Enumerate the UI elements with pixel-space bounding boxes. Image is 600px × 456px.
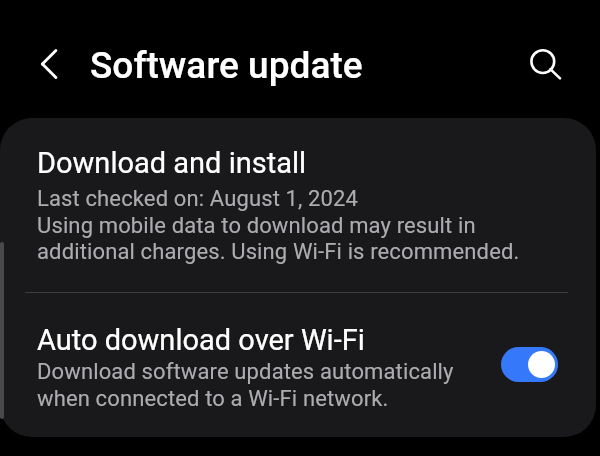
button[interactable]: Search (521, 40, 569, 88)
staticText: Software update (90, 44, 363, 87)
staticText: Download and install (37, 146, 307, 180)
button[interactable]: Auto download over Wi-Fi (0, 294, 596, 437)
button[interactable]: Download and install (0, 118, 596, 293)
staticText: Auto download over Wi-Fi (37, 323, 365, 357)
button[interactable]: Auto download over Wi-Fi, on (501, 347, 558, 382)
staticText: Last checked on: August 1, 2024 Using mo… (37, 186, 520, 264)
staticText: Download software updates automatically … (37, 359, 454, 411)
button[interactable]: Navigate up (28, 44, 68, 84)
